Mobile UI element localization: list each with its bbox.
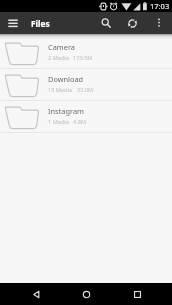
staticText: 4.8M <box>73 118 86 126</box>
button[interactable]: Recent apps <box>122 283 152 305</box>
button[interactable]: Download <box>0 69 172 101</box>
staticText: 17:03 <box>150 1 170 11</box>
button[interactable]: Back <box>21 283 51 305</box>
staticText: 2 Media <box>48 54 69 62</box>
staticText: Download <box>48 74 84 84</box>
staticText: Instagram <box>48 106 84 116</box>
button[interactable]: Home <box>71 283 101 305</box>
button[interactable]: Refresh <box>119 12 145 34</box>
staticText: 173.5M <box>73 54 93 62</box>
staticText: 15 Media <box>48 86 73 94</box>
staticText: Camera <box>48 42 75 52</box>
staticText: 33.0M <box>77 86 94 94</box>
button[interactable]: Camera <box>0 37 172 69</box>
staticText: Files <box>31 18 50 29</box>
button[interactable]: More options <box>145 12 172 34</box>
button[interactable]: Search <box>93 12 119 34</box>
button[interactable]: Instagram <box>0 101 172 133</box>
staticText: 1 Media <box>48 118 69 126</box>
button[interactable]: Open navigation drawer <box>0 12 25 34</box>
